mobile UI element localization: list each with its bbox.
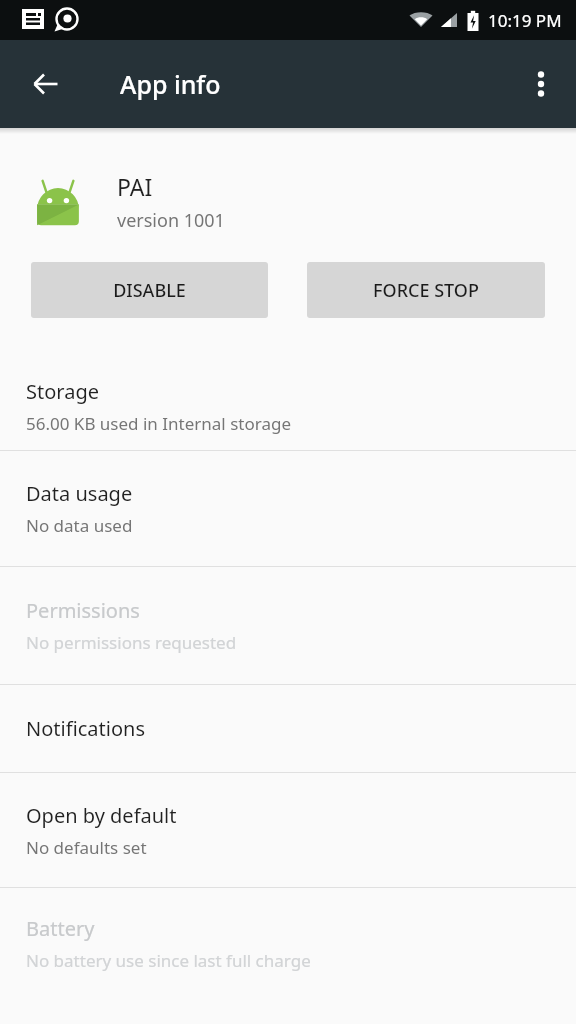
staticText: No battery use since last full charge <box>26 949 311 972</box>
staticText: Permissions <box>26 597 140 624</box>
button[interactable]: Notifications <box>0 685 576 772</box>
button[interactable]: Battery <box>0 888 576 998</box>
staticText: App info <box>120 67 221 101</box>
staticText: No data used <box>26 514 133 537</box>
staticText: version 1001 <box>117 208 225 233</box>
button[interactable]: DISABLE <box>31 262 268 318</box>
staticText: No permissions requested <box>26 631 237 654</box>
button[interactable]: Back <box>22 60 70 108</box>
button[interactable]: Data usage <box>0 451 576 566</box>
staticText: 10:19 PM <box>488 9 562 32</box>
staticText: 56.00 KB used in Internal storage <box>26 412 291 435</box>
button[interactable]: Storage <box>0 362 576 450</box>
button[interactable]: FORCE STOP <box>307 262 545 318</box>
staticText: Battery <box>26 915 95 942</box>
button[interactable]: Permissions <box>0 567 576 684</box>
staticText: DISABLE <box>113 278 186 303</box>
staticText: Data usage <box>26 480 133 507</box>
staticText: Notifications <box>26 715 145 742</box>
button[interactable]: More options <box>517 60 565 108</box>
staticText: Storage <box>26 378 99 405</box>
button[interactable]: Open by default <box>0 773 576 887</box>
staticText: Open by default <box>26 802 177 829</box>
staticText: FORCE STOP <box>373 278 479 303</box>
staticText: PAI <box>117 171 153 202</box>
staticText: No defaults set <box>26 836 147 859</box>
